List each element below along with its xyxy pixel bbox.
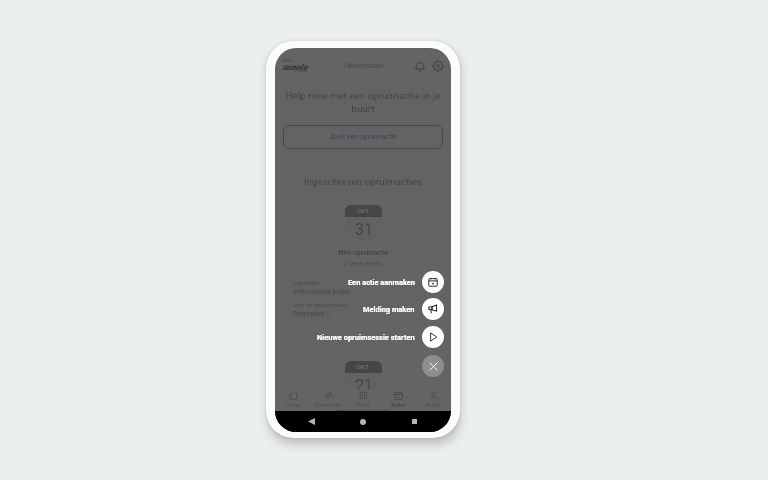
staticText: Kaart (357, 402, 370, 408)
staticText: Mini-opruimactie (338, 249, 389, 257)
button[interactable]: OKT (282, 353, 444, 432)
button[interactable]: Melding maken (275, 298, 444, 320)
staticText: OKT (357, 208, 370, 215)
staticText: Home (286, 402, 300, 408)
staticText: Een actie aanmaken (348, 278, 415, 287)
button[interactable]: Close menu (422, 355, 444, 377)
other: Home (360, 419, 366, 425)
staticText: Community (315, 402, 342, 408)
staticText: Acties (391, 402, 406, 408)
button[interactable]: Settings (430, 58, 446, 74)
button[interactable]: Notifications (412, 58, 428, 74)
staticText: mooie (282, 62, 307, 72)
button[interactable]: Community (311, 389, 346, 410)
other: Back (308, 418, 315, 425)
button[interactable]: OKT (282, 197, 444, 332)
button[interactable]: Nieuwe opruimsessie starten (275, 326, 444, 348)
staticText: Melding maken (363, 305, 415, 314)
button[interactable]: Home (275, 389, 311, 410)
staticText: Help mee met een opruimactie in je buurt (282, 90, 444, 114)
staticText: Buurtschoonmaak (336, 405, 390, 413)
button[interactable]: Profiel (416, 389, 451, 410)
button[interactable]: Acties (381, 389, 416, 410)
staticText: OKT (357, 364, 370, 371)
staticText: 31 (355, 220, 373, 239)
button[interactable]: Zoek een opruimactie (283, 125, 443, 149)
button[interactable]: Kaart (346, 389, 381, 410)
staticText: 5 deelnemers (344, 416, 383, 424)
staticText: Dorpsplein 1 (293, 310, 330, 318)
staticText: Profiel (426, 402, 441, 408)
staticText: Nieuwe opruimsessie starten (317, 333, 415, 342)
staticText: Zoek een opruimactie (330, 133, 397, 141)
button[interactable]: Een actie aanmaken (275, 271, 444, 293)
staticText: Organisatie (293, 280, 319, 286)
staticText: STRAAT (294, 69, 309, 73)
staticText: 21 (355, 376, 373, 395)
staticText: Opruimacties (344, 62, 384, 70)
staticText: 2 deelnemers (344, 260, 383, 268)
staticText: Enthousiaste buren (293, 288, 350, 296)
staticText: Start- en verzamelplaats (293, 302, 348, 308)
staticText: Ingeschreven opruimacties (275, 176, 451, 188)
staticText: HIER IS (283, 60, 294, 63)
